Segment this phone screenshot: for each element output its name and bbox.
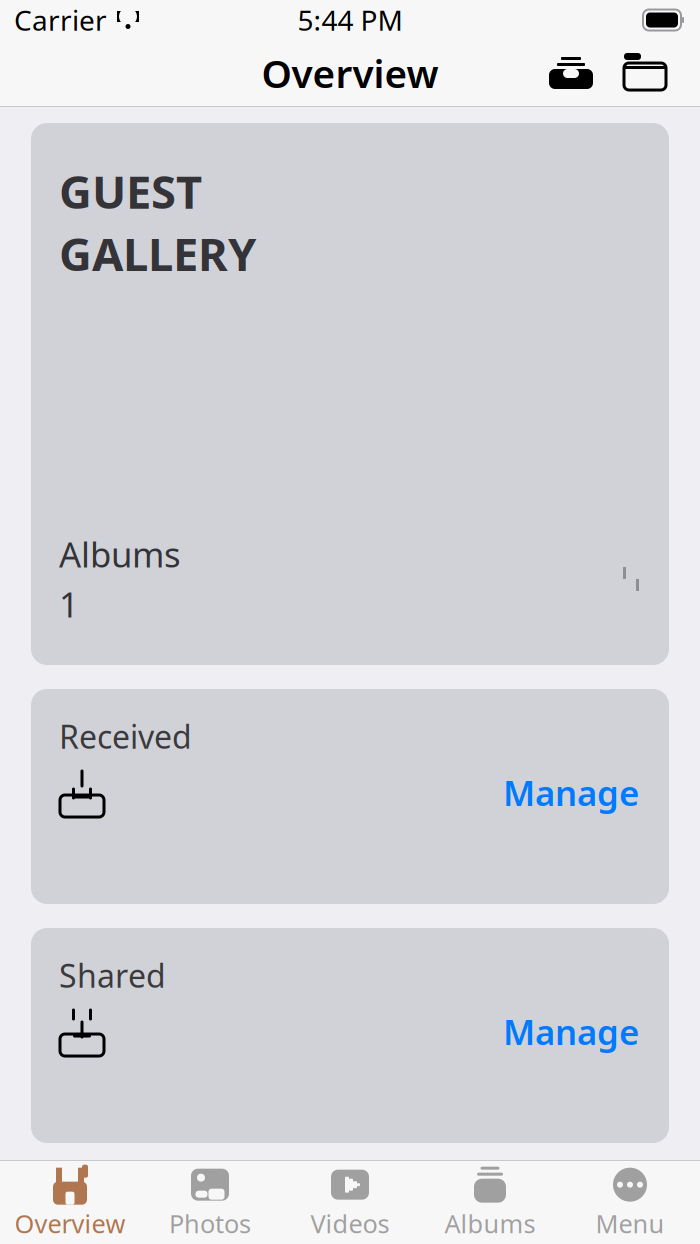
staticText: Videos	[310, 1207, 389, 1240]
staticText: 1	[59, 581, 79, 627]
button[interactable]: Folders	[616, 48, 674, 98]
button[interactable]: Menu	[560, 1160, 700, 1244]
staticText: Carrier	[14, 1, 107, 39]
button[interactable]: Inbox	[542, 48, 600, 98]
button[interactable]: Manage	[491, 998, 651, 1064]
staticText: Manage	[503, 1008, 639, 1054]
staticText: GALLERY	[59, 223, 256, 283]
button[interactable]: GUEST	[31, 123, 669, 665]
staticText: 5:44 PM	[297, 1, 402, 39]
staticText: Overview	[14, 1207, 125, 1240]
staticText: Shared	[59, 954, 166, 996]
staticText: Manage	[503, 769, 639, 815]
button[interactable]: Overview	[0, 1160, 140, 1244]
staticText: Albums	[444, 1207, 535, 1240]
button[interactable]: Manage	[491, 759, 651, 825]
staticText: Albums	[59, 531, 181, 577]
staticText: GUEST	[59, 161, 202, 221]
button[interactable]: Photos	[140, 1160, 280, 1244]
button[interactable]: Videos	[280, 1160, 420, 1244]
staticText: Menu	[595, 1207, 664, 1240]
staticText: Photos	[169, 1207, 251, 1240]
staticText: Received	[59, 715, 192, 757]
staticText: Overview	[261, 47, 438, 99]
button[interactable]: Albums	[420, 1160, 560, 1244]
